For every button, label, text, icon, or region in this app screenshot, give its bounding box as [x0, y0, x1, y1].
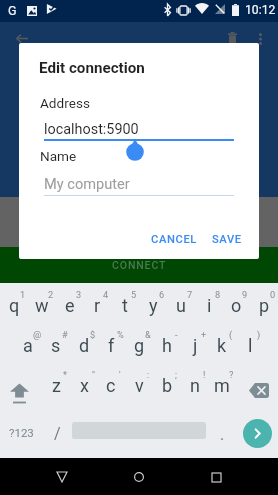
- staticText: *: [63, 369, 67, 380]
- staticText: 9: [242, 289, 248, 300]
- staticText: 3: [76, 289, 82, 300]
- staticText: ?: [229, 369, 234, 380]
- staticText: i: [207, 295, 212, 316]
- staticText: SAVE: [212, 233, 242, 246]
- button[interactable]: (: [208, 323, 236, 363]
- button[interactable]: ': [97, 363, 125, 403]
- staticText: u: [176, 295, 186, 316]
- staticText: 2: [48, 289, 54, 300]
- button[interactable]: #: [42, 323, 70, 363]
- button[interactable]: 6: [139, 283, 167, 323]
- staticText: w: [35, 295, 49, 316]
- button[interactable]: %: [97, 323, 125, 363]
- button[interactable]: 8: [195, 283, 223, 323]
- button[interactable]: @: [14, 323, 42, 363]
- staticText: e: [65, 295, 75, 316]
- staticText: ": [92, 369, 95, 380]
- staticText: ;: [175, 369, 177, 380]
- staticText: o: [231, 295, 242, 316]
- staticText: n: [190, 375, 200, 396]
- button[interactable]: 0: [250, 283, 278, 323]
- button[interactable]: *: [42, 363, 70, 403]
- button[interactable]: 2: [28, 283, 56, 323]
- staticText: $: [90, 329, 96, 340]
- staticText: 0: [270, 289, 276, 300]
- button[interactable]: Back: [47, 462, 77, 492]
- button[interactable]: &: [125, 323, 153, 363]
- staticText: localhost:5900: [44, 121, 139, 138]
- staticText: 6: [159, 289, 165, 300]
- staticText: +: [201, 329, 207, 340]
- button[interactable]: ?123: [0, 403, 42, 443]
- staticText: t: [122, 295, 128, 316]
- staticText: z: [52, 375, 61, 396]
- button[interactable]: ": [70, 363, 98, 403]
- staticText: CONNECT: [112, 259, 167, 271]
- button[interactable]: Enter: [243, 419, 272, 448]
- button[interactable]: Backspace: [236, 363, 278, 403]
- staticText: /: [54, 424, 61, 443]
- staticText: G: [8, 3, 17, 18]
- button[interactable]: 1: [0, 283, 28, 323]
- staticText: %: [117, 329, 124, 340]
- staticText: 5: [131, 289, 137, 300]
- button[interactable]: $: [70, 323, 98, 363]
- staticText: &: [145, 329, 151, 340]
- staticText: 8: [215, 289, 221, 300]
- staticText: 10:12: [245, 3, 276, 17]
- button[interactable]: CANCEL: [150, 227, 198, 251]
- staticText: c: [106, 375, 116, 396]
- button[interactable]: !: [181, 363, 209, 403]
- staticText: .: [220, 425, 225, 444]
- button[interactable]: ;: [153, 363, 181, 403]
- button[interactable]: +: [181, 323, 209, 363]
- button[interactable]: SAVE: [209, 227, 245, 251]
- button[interactable]: Recents: [201, 462, 231, 492]
- button[interactable]: -: [153, 323, 181, 363]
- staticText: ': [119, 369, 121, 380]
- button[interactable]: More options: [242, 22, 278, 58]
- staticText: ): [257, 329, 261, 340]
- staticText: Name: [40, 148, 77, 164]
- button[interactable]: 9: [222, 283, 250, 323]
- button[interactable]: 5: [111, 283, 139, 323]
- staticText: @: [33, 329, 42, 340]
- button[interactable]: Home: [124, 462, 154, 492]
- button[interactable]: ?: [208, 363, 236, 403]
- button[interactable]: .: [206, 403, 236, 443]
- staticText: h: [162, 335, 172, 356]
- staticText: r: [94, 295, 101, 316]
- button[interactable]: 7: [167, 283, 195, 323]
- staticText: Address: [40, 95, 90, 111]
- staticText: k: [217, 335, 227, 356]
- staticText: a: [23, 335, 33, 356]
- staticText: m: [214, 375, 230, 396]
- staticText: l: [248, 335, 253, 356]
- button[interactable]: :: [125, 363, 153, 403]
- staticText: ?123: [9, 426, 34, 439]
- staticText: p: [259, 295, 270, 316]
- staticText: y: [149, 295, 158, 316]
- button[interactable]: Shift: [0, 363, 42, 403]
- staticText: v: [135, 375, 144, 396]
- button[interactable]: 3: [56, 283, 84, 323]
- staticText: -: [175, 329, 178, 340]
- staticText: :: [147, 369, 150, 380]
- staticText: f: [108, 335, 115, 356]
- button[interactable]: Navigate up: [4, 22, 40, 58]
- staticText: x: [80, 375, 89, 396]
- staticText: (: [229, 329, 233, 340]
- staticText: g: [134, 335, 145, 356]
- button[interactable]: ): [236, 323, 264, 363]
- staticText: My computer: [44, 175, 130, 192]
- staticText: !: [203, 369, 206, 380]
- staticText: q: [9, 295, 20, 316]
- staticText: j: [193, 335, 198, 356]
- button[interactable]: 4: [83, 283, 111, 323]
- staticText: b: [162, 375, 173, 396]
- staticText: #: [62, 329, 68, 340]
- staticText: s: [51, 335, 61, 356]
- button[interactable]: Delete: [215, 22, 251, 58]
- button[interactable]: /: [42, 403, 72, 443]
